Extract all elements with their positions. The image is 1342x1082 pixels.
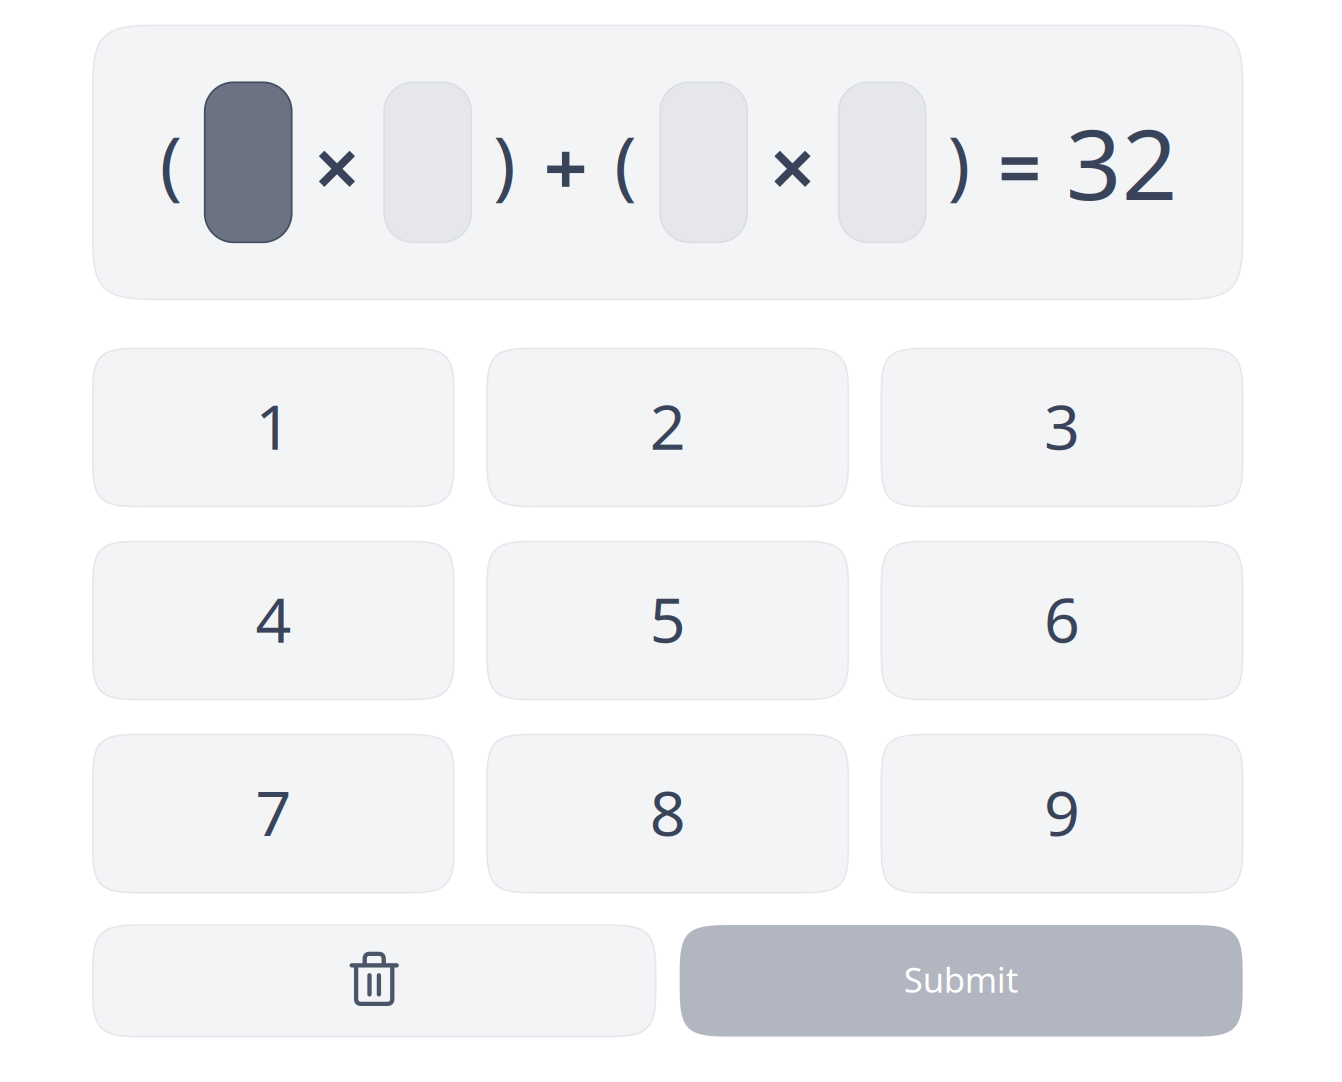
button[interactable]: 5: [487, 541, 848, 700]
staticText: 7: [255, 770, 291, 853]
staticText: 3: [1044, 384, 1080, 467]
button[interactable]: Submit: [680, 925, 1243, 1037]
staticText: 6: [1044, 577, 1080, 660]
button[interactable]: 3: [881, 348, 1243, 506]
button[interactable]: Clear: [93, 925, 656, 1037]
staticText: (: [160, 113, 182, 212]
staticText: ): [948, 113, 970, 212]
button[interactable]: 1: [93, 348, 454, 506]
button[interactable]: 2: [487, 348, 848, 506]
staticText: 2: [650, 384, 686, 467]
staticText: 1: [255, 384, 291, 467]
button[interactable]: 6: [881, 541, 1243, 700]
staticText: 8: [650, 770, 686, 853]
button[interactable]: 9: [881, 734, 1243, 893]
staticText: ): [493, 113, 515, 212]
staticText: (: [614, 113, 636, 212]
staticText: 5: [650, 577, 686, 660]
staticText: 4: [255, 577, 291, 660]
button[interactable]: 7: [93, 734, 454, 893]
button[interactable]: 4: [93, 541, 454, 700]
staticText: 32: [1066, 98, 1178, 227]
button[interactable]: 8: [487, 734, 848, 893]
staticText: Submit: [904, 956, 1019, 1002]
staticText: 9: [1044, 770, 1080, 853]
